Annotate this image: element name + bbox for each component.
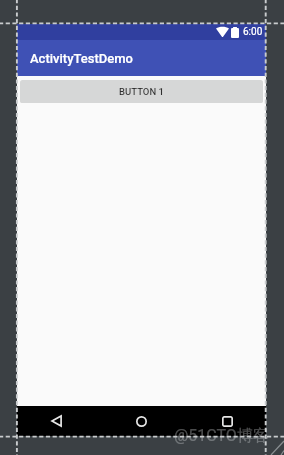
- button[interactable]: Recents: [198, 406, 256, 436]
- button[interactable]: BUTTON 1: [20, 80, 263, 103]
- staticText: ActivityTestDemo: [30, 51, 133, 66]
- staticText: @51CTO博客: [174, 426, 269, 446]
- staticText: BUTTON 1: [119, 86, 164, 97]
- button[interactable]: Back: [27, 406, 85, 436]
- staticText: 6:00: [243, 26, 263, 38]
- button[interactable]: Home: [112, 406, 170, 436]
